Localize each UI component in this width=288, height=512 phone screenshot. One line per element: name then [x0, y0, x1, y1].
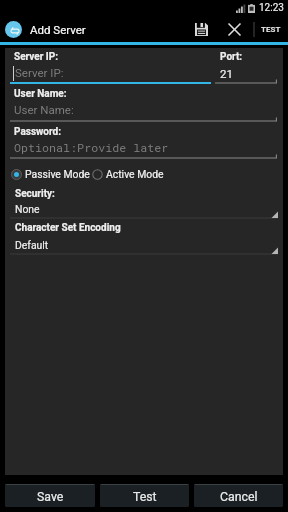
button[interactable]: Cancel: [194, 484, 283, 507]
button[interactable]: App icon: [5, 21, 22, 38]
staticText: Server IP:: [15, 66, 64, 79]
staticText: None: [15, 203, 40, 215]
button[interactable]: Test: [100, 484, 189, 507]
staticText: TEST: [261, 25, 281, 34]
staticText: Character Set Encoding: [15, 222, 121, 234]
staticText: Test: [133, 490, 157, 504]
staticText: Active Mode: [106, 168, 164, 180]
button[interactable]: Passive Mode: [11, 166, 90, 182]
staticText: User Name:: [14, 103, 74, 116]
button[interactable]: Close: [222, 17, 247, 42]
staticText: 21: [220, 67, 233, 80]
staticText: Optional:Provide later: [14, 140, 169, 155]
staticText: Port:: [220, 51, 243, 63]
staticText: Password:: [14, 126, 62, 138]
button[interactable]: Active Mode: [92, 166, 164, 182]
button[interactable]: Save: [189, 17, 214, 42]
staticText: Security:: [15, 188, 55, 200]
button[interactable]: Save: [5, 484, 95, 507]
staticText: Add Server: [30, 23, 86, 36]
staticText: Cancel: [220, 490, 258, 504]
staticText: Passive Mode: [25, 168, 90, 180]
staticText: Default: [15, 239, 49, 251]
staticText: Server IP:: [14, 51, 59, 63]
button[interactable]: TEST: [258, 16, 284, 42]
staticText: User Name:: [14, 88, 67, 100]
staticText: Save: [37, 490, 64, 504]
staticText: 12:23: [259, 2, 284, 14]
